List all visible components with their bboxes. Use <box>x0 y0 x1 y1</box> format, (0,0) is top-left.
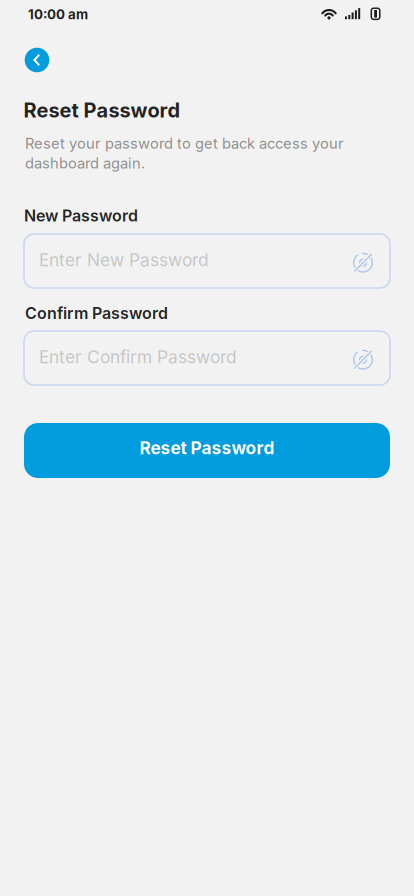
staticText: Reset Password <box>139 438 274 458</box>
staticText: 10:00 am <box>28 7 88 22</box>
button[interactable]: Reset Password <box>24 423 390 478</box>
staticText: Reset your password to get back access y… <box>25 135 344 172</box>
staticText: Reset Password <box>23 98 180 122</box>
button[interactable]: Back <box>25 48 49 72</box>
button[interactable]: Show password <box>351 251 375 275</box>
staticText: Enter New Password <box>39 250 209 270</box>
button[interactable]: Show password <box>351 348 375 372</box>
staticText: New Password <box>24 206 138 225</box>
staticText: Enter Confirm Password <box>39 347 237 367</box>
staticText: Confirm Password <box>25 304 168 323</box>
